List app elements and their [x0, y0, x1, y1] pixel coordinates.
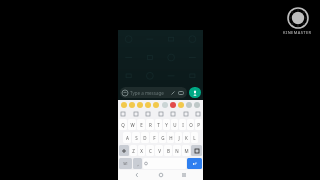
- button[interactable]: Emoji: [194, 102, 200, 108]
- staticText: ,: [137, 161, 139, 167]
- button[interactable]: Emoji: [153, 102, 159, 108]
- button[interactable]: Shift: [119, 145, 129, 156]
- button[interactable]: E: [137, 119, 145, 130]
- button[interactable]: Keyboard tool 6: [195, 111, 201, 117]
- button[interactable]: Emoji: [178, 102, 184, 108]
- button[interactable]: Emoji: [162, 102, 168, 108]
- button[interactable]: X: [138, 145, 145, 156]
- staticText: I: [182, 122, 184, 128]
- staticText: U: [173, 122, 177, 128]
- other: Attach: [170, 90, 176, 96]
- button[interactable]: Enter: [187, 158, 202, 169]
- staticText: Z: [132, 148, 135, 154]
- staticText: W: [130, 122, 135, 128]
- button[interactable]: ,: [133, 158, 142, 169]
- button[interactable]: F: [150, 132, 158, 143]
- button[interactable]: R: [146, 119, 154, 130]
- button[interactable]: K: [183, 132, 190, 143]
- button[interactable]: Emoji: [129, 102, 135, 108]
- button[interactable]: L: [191, 132, 198, 143]
- button[interactable]: Home: [157, 171, 165, 179]
- staticText: B: [167, 148, 170, 154]
- button[interactable]: Space: [143, 158, 186, 169]
- staticText: Y: [165, 122, 168, 128]
- button[interactable]: Keyboard tool 5: [183, 111, 189, 117]
- button[interactable]: Keyboard tool 0: [120, 111, 126, 117]
- button[interactable]: Keyboard tool 4: [170, 111, 176, 117]
- button[interactable]: Z: [130, 145, 137, 156]
- button[interactable]: !#1: [119, 158, 132, 169]
- staticText: X: [140, 148, 143, 154]
- staticText: T: [157, 122, 160, 128]
- staticText: S: [135, 135, 138, 141]
- button[interactable]: A: [123, 132, 131, 143]
- staticText: R: [149, 122, 152, 128]
- button[interactable]: Y: [163, 119, 170, 130]
- button[interactable]: T: [155, 119, 162, 130]
- button[interactable]: Recents: [180, 171, 188, 179]
- button[interactable]: Voice message: [189, 87, 201, 98]
- button[interactable]: Backspace: [191, 145, 202, 156]
- button[interactable]: D: [141, 132, 149, 143]
- button[interactable]: Emoji: [137, 102, 143, 108]
- staticText: O: [189, 122, 193, 128]
- staticText: Type a message: [130, 90, 164, 96]
- button[interactable]: Emoji: [121, 102, 127, 108]
- button[interactable]: O: [187, 119, 194, 130]
- staticText: J: [178, 135, 180, 141]
- button[interactable]: H: [167, 132, 174, 143]
- button[interactable]: B: [164, 145, 172, 156]
- button[interactable]: Keyboard tool 1: [133, 111, 139, 117]
- button[interactable]: Back: [133, 171, 141, 179]
- button[interactable]: P: [195, 119, 202, 130]
- staticText: P: [197, 122, 200, 128]
- staticText: A: [126, 135, 129, 141]
- button[interactable]: C: [146, 145, 154, 156]
- other: Emoji: [122, 90, 128, 96]
- staticText: KINEMASTER: [283, 30, 312, 35]
- button[interactable]: Emoji: [186, 102, 192, 108]
- staticText: !#1: [123, 162, 128, 166]
- staticText: F: [153, 135, 156, 141]
- button[interactable]: J: [175, 132, 182, 143]
- button[interactable]: Keyboard tool 3: [158, 111, 164, 117]
- button[interactable]: Emoji: [145, 102, 151, 108]
- button[interactable]: I: [179, 119, 186, 130]
- staticText: L: [193, 135, 196, 141]
- staticText: N: [175, 148, 179, 154]
- button[interactable]: G: [159, 132, 166, 143]
- staticText: E: [140, 122, 143, 128]
- button[interactable]: Q: [119, 119, 127, 130]
- button[interactable]: U: [171, 119, 178, 130]
- button[interactable]: N: [173, 145, 181, 156]
- button[interactable]: W: [128, 119, 136, 130]
- staticText: Q: [121, 122, 125, 128]
- staticText: K: [185, 135, 188, 141]
- button[interactable]: M: [182, 145, 190, 156]
- other: Camera: [178, 90, 184, 96]
- button[interactable]: V: [155, 145, 163, 156]
- staticText: V: [158, 148, 161, 154]
- button[interactable]: Keyboard tool 2: [145, 111, 151, 117]
- button[interactable]: S: [132, 132, 140, 143]
- staticText: H: [169, 135, 173, 141]
- staticText: D: [143, 135, 147, 141]
- button[interactable]: Emoji: [170, 102, 176, 108]
- staticText: G: [161, 135, 165, 141]
- staticText: C: [149, 148, 152, 154]
- staticText: M: [184, 148, 189, 154]
- button[interactable]: Emoji: [120, 87, 187, 98]
